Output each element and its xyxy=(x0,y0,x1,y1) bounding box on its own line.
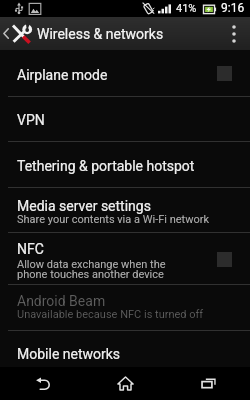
button[interactable]: Back xyxy=(0,367,84,400)
button[interactable]: Media server settings xyxy=(0,188,250,232)
button[interactable]: Navigate up xyxy=(0,17,36,50)
staticText: Unavailable because NFC is turned off xyxy=(17,308,204,321)
staticText: 9:16 xyxy=(221,1,245,15)
button[interactable]: Tethering & portable hotspot xyxy=(0,142,250,187)
staticText: Mobile networks xyxy=(17,346,121,362)
button[interactable]: Airplane mode checkbox xyxy=(210,59,238,87)
staticText: Android Beam xyxy=(17,293,106,309)
staticText: Allow data exchange when the phone touch… xyxy=(17,258,166,281)
button[interactable]: NFC checkbox xyxy=(210,245,238,273)
staticText: VPN xyxy=(17,112,45,128)
staticText: Tethering & portable hotspot xyxy=(17,158,195,174)
button[interactable]: Android Beam xyxy=(0,285,250,330)
button[interactable]: NFC xyxy=(0,233,250,284)
staticText: Wireless & networks xyxy=(37,26,164,42)
button[interactable]: Airplane mode xyxy=(0,50,250,96)
button[interactable]: Recent apps xyxy=(167,367,250,400)
staticText: Media server settings xyxy=(17,198,151,214)
staticText: Share your contents via a Wi-Fi network xyxy=(17,213,210,226)
button[interactable]: Home xyxy=(84,367,167,400)
button[interactable]: VPN xyxy=(0,97,250,141)
button[interactable]: More options xyxy=(224,17,250,50)
button[interactable]: Mobile networks xyxy=(0,331,250,367)
staticText: Airplane mode xyxy=(17,67,108,83)
staticText: 41% xyxy=(176,2,197,15)
staticText: NFC xyxy=(17,241,44,257)
